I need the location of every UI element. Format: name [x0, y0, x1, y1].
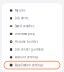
- staticText: Application settings: [15, 63, 43, 67]
- button[interactable]: Job seeker guidance: [2, 46, 62, 53]
- button[interactable]: Resume builder: [2, 38, 62, 46]
- button[interactable]: Job alerts: [2, 14, 62, 22]
- button[interactable]: Interview prep: [2, 30, 62, 38]
- staticText: Account settings: [15, 55, 38, 59]
- staticText: Interview prep: [15, 32, 35, 36]
- staticText: Job seeker guidance: [15, 48, 44, 51]
- staticText: Saved searches: [15, 24, 34, 28]
- button[interactable]: Account settings: [2, 53, 62, 61]
- staticText: Resume builder: [15, 40, 38, 43]
- staticText: My jobs: [15, 9, 25, 12]
- button[interactable]: My jobs: [2, 7, 62, 14]
- button[interactable]: Saved searches: [2, 22, 62, 30]
- button[interactable]: Application settings: [2, 61, 62, 69]
- staticText: Job alerts: [15, 16, 28, 20]
